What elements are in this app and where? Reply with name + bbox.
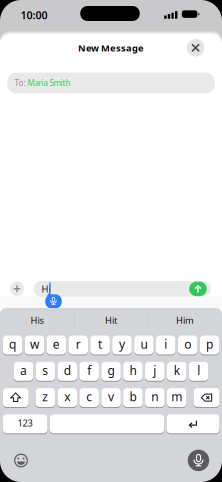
- staticText: q: [9, 336, 16, 352]
- button[interactable]: x: [57, 388, 77, 408]
- button[interactable]: Hit: [76, 311, 146, 329]
- button[interactable]: Him: [150, 311, 220, 329]
- staticText: Him: [176, 314, 194, 326]
- staticText: 10:00: [20, 8, 47, 22]
- button[interactable]: Hi: [33, 281, 211, 297]
- staticText: c: [86, 389, 92, 404]
- button[interactable]: v: [101, 388, 121, 408]
- button[interactable]: i: [156, 335, 176, 355]
- staticText: y: [119, 336, 125, 352]
- button[interactable]: [193, 388, 219, 408]
- staticText: 123: [18, 417, 33, 429]
- button[interactable]: f: [79, 361, 99, 381]
- button[interactable]: [166, 414, 219, 434]
- button[interactable]: n: [145, 388, 165, 408]
- staticText: x: [64, 389, 70, 404]
- staticText: h: [129, 362, 136, 378]
- staticText: z: [42, 389, 48, 404]
- button[interactable]: k: [167, 361, 186, 381]
- button[interactable]: His: [2, 311, 72, 329]
- staticText: Hi: [41, 283, 50, 295]
- button[interactable]: p: [200, 335, 219, 355]
- staticText: k: [174, 362, 180, 378]
- button[interactable]: b: [123, 388, 143, 408]
- staticText: s: [42, 362, 48, 378]
- button[interactable]: o: [178, 335, 197, 355]
- button[interactable]: s: [35, 361, 55, 381]
- staticText: b: [129, 389, 136, 404]
- button[interactable]: [10, 282, 24, 296]
- staticText: o: [184, 336, 191, 352]
- button[interactable]: j: [145, 361, 165, 381]
- staticText: His: [30, 314, 43, 326]
- button[interactable]: z: [35, 388, 55, 408]
- staticText: New Message: [78, 42, 144, 54]
- button[interactable]: [189, 282, 207, 296]
- staticText: i: [164, 336, 167, 352]
- button[interactable]: m: [167, 388, 186, 408]
- button[interactable]: To:: [7, 73, 215, 93]
- staticText: l: [197, 362, 200, 378]
- button[interactable]: w: [25, 335, 44, 355]
- staticText: v: [108, 389, 114, 404]
- button[interactable]: e: [46, 335, 66, 355]
- staticText: n: [151, 389, 158, 404]
- button[interactable]: u: [134, 335, 154, 355]
- staticText: j: [153, 362, 156, 378]
- staticText: m: [171, 389, 182, 404]
- button[interactable]: [187, 39, 204, 56]
- button[interactable]: [50, 414, 164, 434]
- button[interactable]: [14, 453, 28, 467]
- button[interactable]: l: [189, 361, 208, 381]
- staticText: u: [140, 336, 147, 352]
- staticText: a: [20, 362, 27, 378]
- button[interactable]: t: [90, 335, 110, 355]
- button[interactable]: g: [101, 361, 121, 381]
- staticText: w: [30, 336, 39, 352]
- staticText: p: [206, 336, 213, 352]
- button[interactable]: h: [123, 361, 143, 381]
- button[interactable]: c: [79, 388, 99, 408]
- button[interactable]: [3, 388, 29, 408]
- button[interactable]: q: [3, 335, 22, 355]
- staticText: e: [53, 336, 60, 352]
- staticText: r: [76, 336, 81, 352]
- staticText: d: [64, 362, 71, 378]
- staticText: f: [87, 362, 91, 378]
- button[interactable]: d: [57, 361, 77, 381]
- button[interactable]: [188, 450, 208, 470]
- staticText: t: [98, 336, 102, 352]
- button[interactable]: y: [112, 335, 132, 355]
- button[interactable]: r: [68, 335, 88, 355]
- staticText: Maria Smith: [27, 78, 70, 88]
- button[interactable]: 123: [3, 414, 47, 434]
- button[interactable]: a: [14, 361, 33, 381]
- button[interactable]: [45, 293, 62, 308]
- staticText: To:: [14, 78, 27, 88]
- staticText: Hit: [105, 314, 117, 326]
- staticText: g: [107, 362, 114, 378]
